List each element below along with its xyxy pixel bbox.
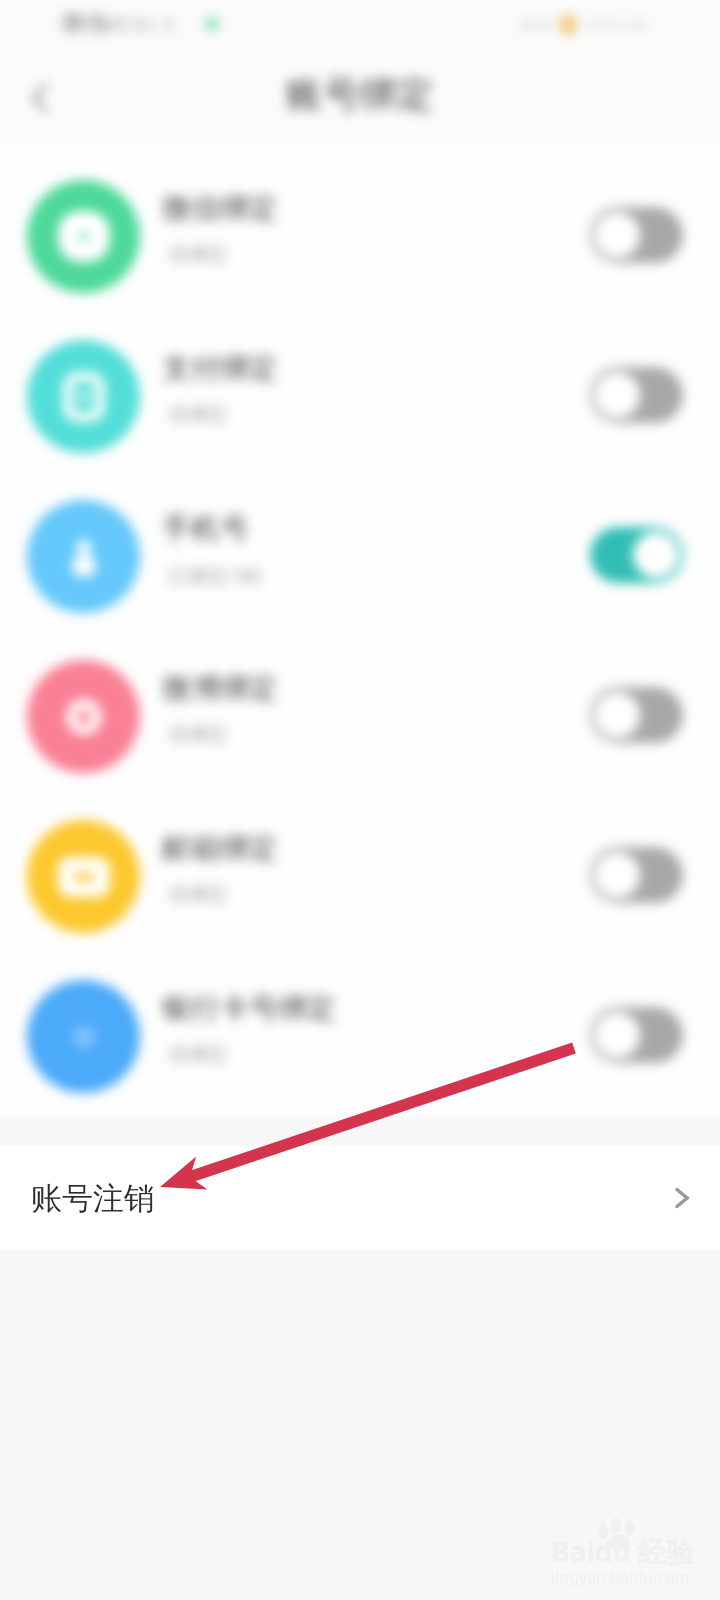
button[interactable]: 微信绑定	[0, 146, 720, 306]
button[interactable]: Back	[0, 58, 80, 138]
staticText: 未绑定	[168, 1042, 228, 1067]
button[interactable]	[590, 687, 683, 743]
button[interactable]	[590, 207, 683, 263]
staticText: 邮箱绑定	[162, 830, 278, 867]
staticText: 账号绑定	[286, 71, 434, 118]
button[interactable]: 手机号	[0, 466, 720, 626]
button[interactable]: 支付绑定	[0, 306, 720, 466]
button[interactable]: 微博绑定	[0, 626, 720, 786]
staticText: 银行卡号绑定	[162, 990, 336, 1027]
button[interactable]	[590, 847, 683, 903]
staticText: 微信	[62, 9, 106, 37]
staticText: 微博绑定	[162, 670, 278, 707]
button[interactable]: 银行卡号绑定	[0, 946, 720, 1106]
staticText: 未绑定	[168, 882, 228, 907]
staticText: 账号注销	[31, 1179, 155, 1218]
button[interactable]: 账号注销	[0, 1146, 720, 1250]
button[interactable]	[590, 367, 683, 423]
button[interactable]	[590, 527, 683, 583]
button[interactable]: 邮箱绑定	[0, 786, 720, 946]
staticText: 已绑定186	[168, 562, 263, 589]
staticText: 微信绑定	[162, 190, 278, 227]
staticText: 手机号	[162, 510, 249, 547]
staticText: 未绑定	[168, 722, 228, 747]
button[interactable]	[590, 1007, 683, 1063]
staticText: 未绑定	[168, 402, 228, 427]
staticText: Baidu 经验	[551, 1532, 694, 1570]
staticText: 支付绑定	[162, 350, 278, 387]
staticText: 未绑定	[168, 242, 228, 267]
